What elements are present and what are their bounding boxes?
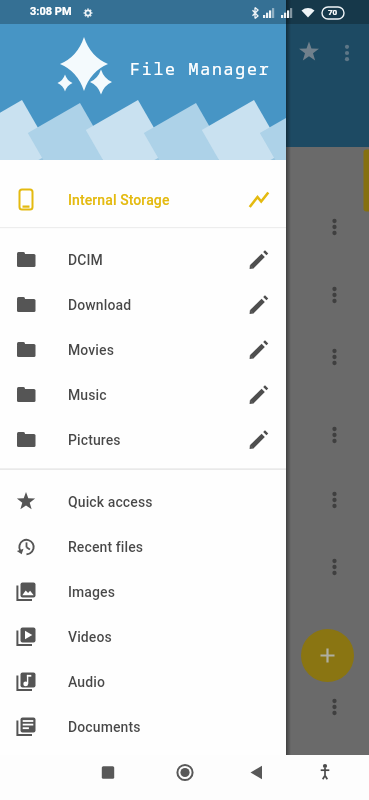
staticText: Images (68, 584, 116, 600)
button[interactable] (301, 629, 354, 682)
button[interactable]: DCIM (0, 237, 286, 282)
staticText: Documents (68, 719, 141, 735)
button[interactable]: Images (0, 569, 286, 614)
staticText: 70 (328, 8, 338, 17)
button[interactable]: Music (0, 372, 286, 417)
staticText: Videos (68, 629, 112, 645)
staticText: Music (68, 387, 107, 403)
button[interactable]: Videos (0, 614, 286, 659)
staticText: DCIM (68, 252, 103, 268)
button[interactable]: Quick access (0, 479, 286, 524)
button[interactable]: Recent files (0, 524, 286, 569)
staticText: Audio (68, 674, 105, 690)
button[interactable] (84, 755, 132, 788)
staticText: Download (68, 297, 132, 313)
staticText: Pictures (68, 432, 121, 448)
staticText: File Manager (130, 57, 271, 79)
staticText: Quick access (68, 494, 153, 510)
staticText: 3:08 PM (30, 5, 72, 18)
button[interactable] (161, 755, 209, 788)
staticText: Movies (68, 342, 114, 358)
staticText: Internal Storage (68, 192, 170, 208)
button[interactable]: Pictures (0, 417, 286, 462)
button[interactable] (233, 755, 281, 788)
button[interactable]: Internal Storage (0, 177, 286, 222)
button[interactable] (301, 755, 349, 788)
button[interactable]: Download (0, 282, 286, 327)
button[interactable]: Movies (0, 327, 286, 372)
button[interactable]: Documents (0, 704, 286, 749)
button[interactable]: Audio (0, 659, 286, 704)
staticText: Recent files (68, 539, 144, 555)
